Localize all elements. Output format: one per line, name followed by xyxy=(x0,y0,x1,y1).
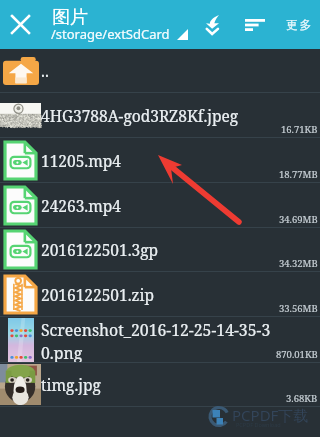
staticText: 870.01KB xyxy=(276,348,318,361)
staticText: Screenshot_2016-12-25-14-35-3 xyxy=(41,319,271,341)
button[interactable]: 4HG3788A-god3RZ8Kf.jpeg xyxy=(0,93,320,137)
staticText: 34.32MB xyxy=(279,257,318,270)
staticText: 2016122501.zip xyxy=(41,284,154,305)
staticText: 11205.mp4 xyxy=(41,150,122,171)
staticText: 4HG3788A-god3RZ8Kf.jpeg xyxy=(41,105,239,126)
button[interactable]: Sort xyxy=(239,0,271,49)
button[interactable]: 2016122501.zip xyxy=(0,272,320,316)
staticText: 图片 xyxy=(52,6,88,29)
staticText: .. xyxy=(41,60,49,81)
button[interactable]: Download xyxy=(196,0,228,49)
button[interactable]: 2016122501.3gp xyxy=(0,228,320,271)
button[interactable]: 24263.mp4 xyxy=(0,183,320,227)
staticText: 18.77MB xyxy=(279,168,318,181)
button[interactable]: 更多 xyxy=(280,0,320,49)
button[interactable]: timg.jpg xyxy=(0,363,320,406)
staticText: PCPDF下载 xyxy=(232,405,309,425)
staticText: 16.71KB xyxy=(281,123,318,136)
button[interactable]: .. xyxy=(0,49,320,92)
staticText: PCPDF Download xyxy=(236,421,281,428)
staticText: 3.68KB xyxy=(286,392,318,405)
staticText: /storage/extSdCard xyxy=(51,25,170,43)
staticText: 更多 xyxy=(286,17,314,32)
staticText: 34.69MB xyxy=(279,213,318,226)
button[interactable]: Close xyxy=(0,0,40,49)
staticText: 24263.mp4 xyxy=(41,195,122,216)
staticText: 33.56MB xyxy=(279,302,318,315)
staticText: timg.jpg xyxy=(41,374,101,395)
button[interactable]: 11205.mp4 xyxy=(0,138,320,182)
staticText: 0.png xyxy=(41,342,83,364)
staticText: 2016122501.3gp xyxy=(41,239,159,260)
button[interactable]: Screenshot_2016-12-25-14-35-3 xyxy=(0,317,320,362)
